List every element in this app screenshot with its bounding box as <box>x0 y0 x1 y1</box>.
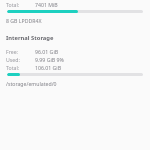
button[interactable]: 8 GB LPDDR4X <box>6 17 144 24</box>
button[interactable]: Used: <box>6 56 144 63</box>
button[interactable]: Total: <box>6 64 144 71</box>
staticText: 96.01 GiB <box>35 48 59 55</box>
button[interactable]: Total: <box>6 1 144 8</box>
staticText: Used: <box>6 56 20 63</box>
staticText: 9.99 GiB 9% <box>35 56 64 63</box>
staticText: Free: <box>6 48 18 55</box>
button[interactable]: Internal Storage <box>6 34 144 42</box>
staticText: Total: <box>6 1 20 8</box>
button[interactable]: /storage/emulated/0 <box>6 80 144 87</box>
staticText: 7401 MiB <box>35 1 58 8</box>
staticText: /storage/emulated/0 <box>6 80 57 87</box>
staticText: 106.01 GiB <box>35 64 62 71</box>
staticText: 8 GB LPDDR4X <box>6 17 42 24</box>
staticText: Internal Storage <box>6 34 54 42</box>
button[interactable]: Free: <box>6 48 144 55</box>
staticText: Total: <box>6 64 20 71</box>
